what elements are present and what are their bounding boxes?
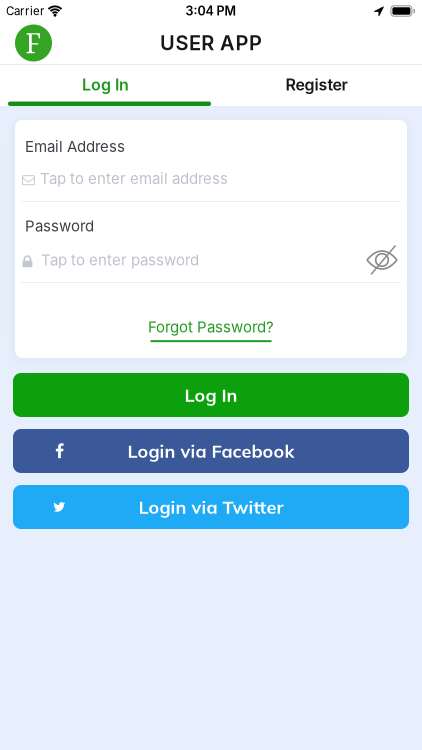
button[interactable]: Login via Twitter (13, 485, 409, 529)
button[interactable]: Forgot Password? (148, 318, 274, 342)
staticText: Register (285, 75, 347, 94)
staticText: Login via Facebook (127, 440, 294, 462)
staticText: USER APP (160, 31, 262, 55)
staticText: Log In (184, 384, 237, 406)
staticText: Tap to enter email address (40, 169, 228, 188)
staticText: Tap to enter password (41, 251, 199, 269)
button[interactable]: Show password (362, 241, 402, 279)
staticText: Email Address (25, 137, 125, 156)
button[interactable]: Log In (13, 373, 409, 417)
staticText: Login via Twitter (138, 496, 283, 518)
staticText:  (22, 173, 35, 186)
staticText: Password (25, 217, 94, 235)
button[interactable]: Register (211, 65, 422, 101)
staticText:  (374, 5, 384, 17)
button[interactable]: Login via Facebook (13, 429, 409, 473)
staticText:  (53, 500, 66, 514)
staticText: Forgot Password? (148, 318, 274, 336)
staticText:  (55, 443, 64, 459)
button[interactable]: Log In (0, 65, 211, 101)
staticText: Carrier (6, 4, 44, 18)
staticText: Log In (82, 75, 129, 94)
staticText: F (25, 25, 41, 61)
staticText: 3:04 PM (185, 3, 236, 18)
staticText:  (22, 254, 32, 269)
